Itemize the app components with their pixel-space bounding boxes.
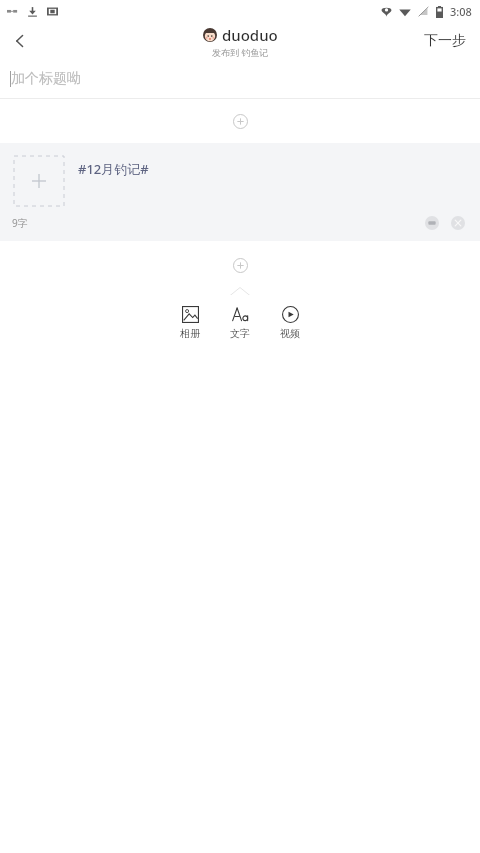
staticText: #12月钓记# — [78, 160, 149, 178]
button[interactable]: Add image — [14, 156, 64, 206]
staticText: 下一步 — [424, 32, 466, 50]
button[interactable]: 相册 — [172, 302, 208, 344]
button[interactable]: 视频 — [272, 302, 308, 344]
button[interactable]: Add block — [227, 108, 253, 134]
staticText: 3:08 — [450, 4, 472, 19]
button[interactable]: 下一步 — [410, 25, 480, 57]
staticText: 9字 — [12, 216, 28, 230]
staticText: 视频 — [280, 327, 300, 340]
button[interactable]: 加个标题呦 — [0, 60, 480, 98]
button[interactable]: Add block — [227, 252, 253, 278]
staticText: 发布到 钓鱼记 — [212, 46, 269, 58]
staticText: 相册 — [180, 327, 200, 340]
staticText: duoduo — [222, 25, 278, 45]
staticText: 加个标题呦 — [11, 70, 81, 88]
button[interactable]: Back — [0, 22, 40, 60]
button[interactable]: 文字 — [222, 302, 258, 344]
button[interactable]: Delete — [448, 213, 468, 233]
staticText: 文字 — [230, 327, 250, 340]
button[interactable]: Add image — [0, 143, 480, 241]
button[interactable]: Reorder — [422, 213, 442, 233]
